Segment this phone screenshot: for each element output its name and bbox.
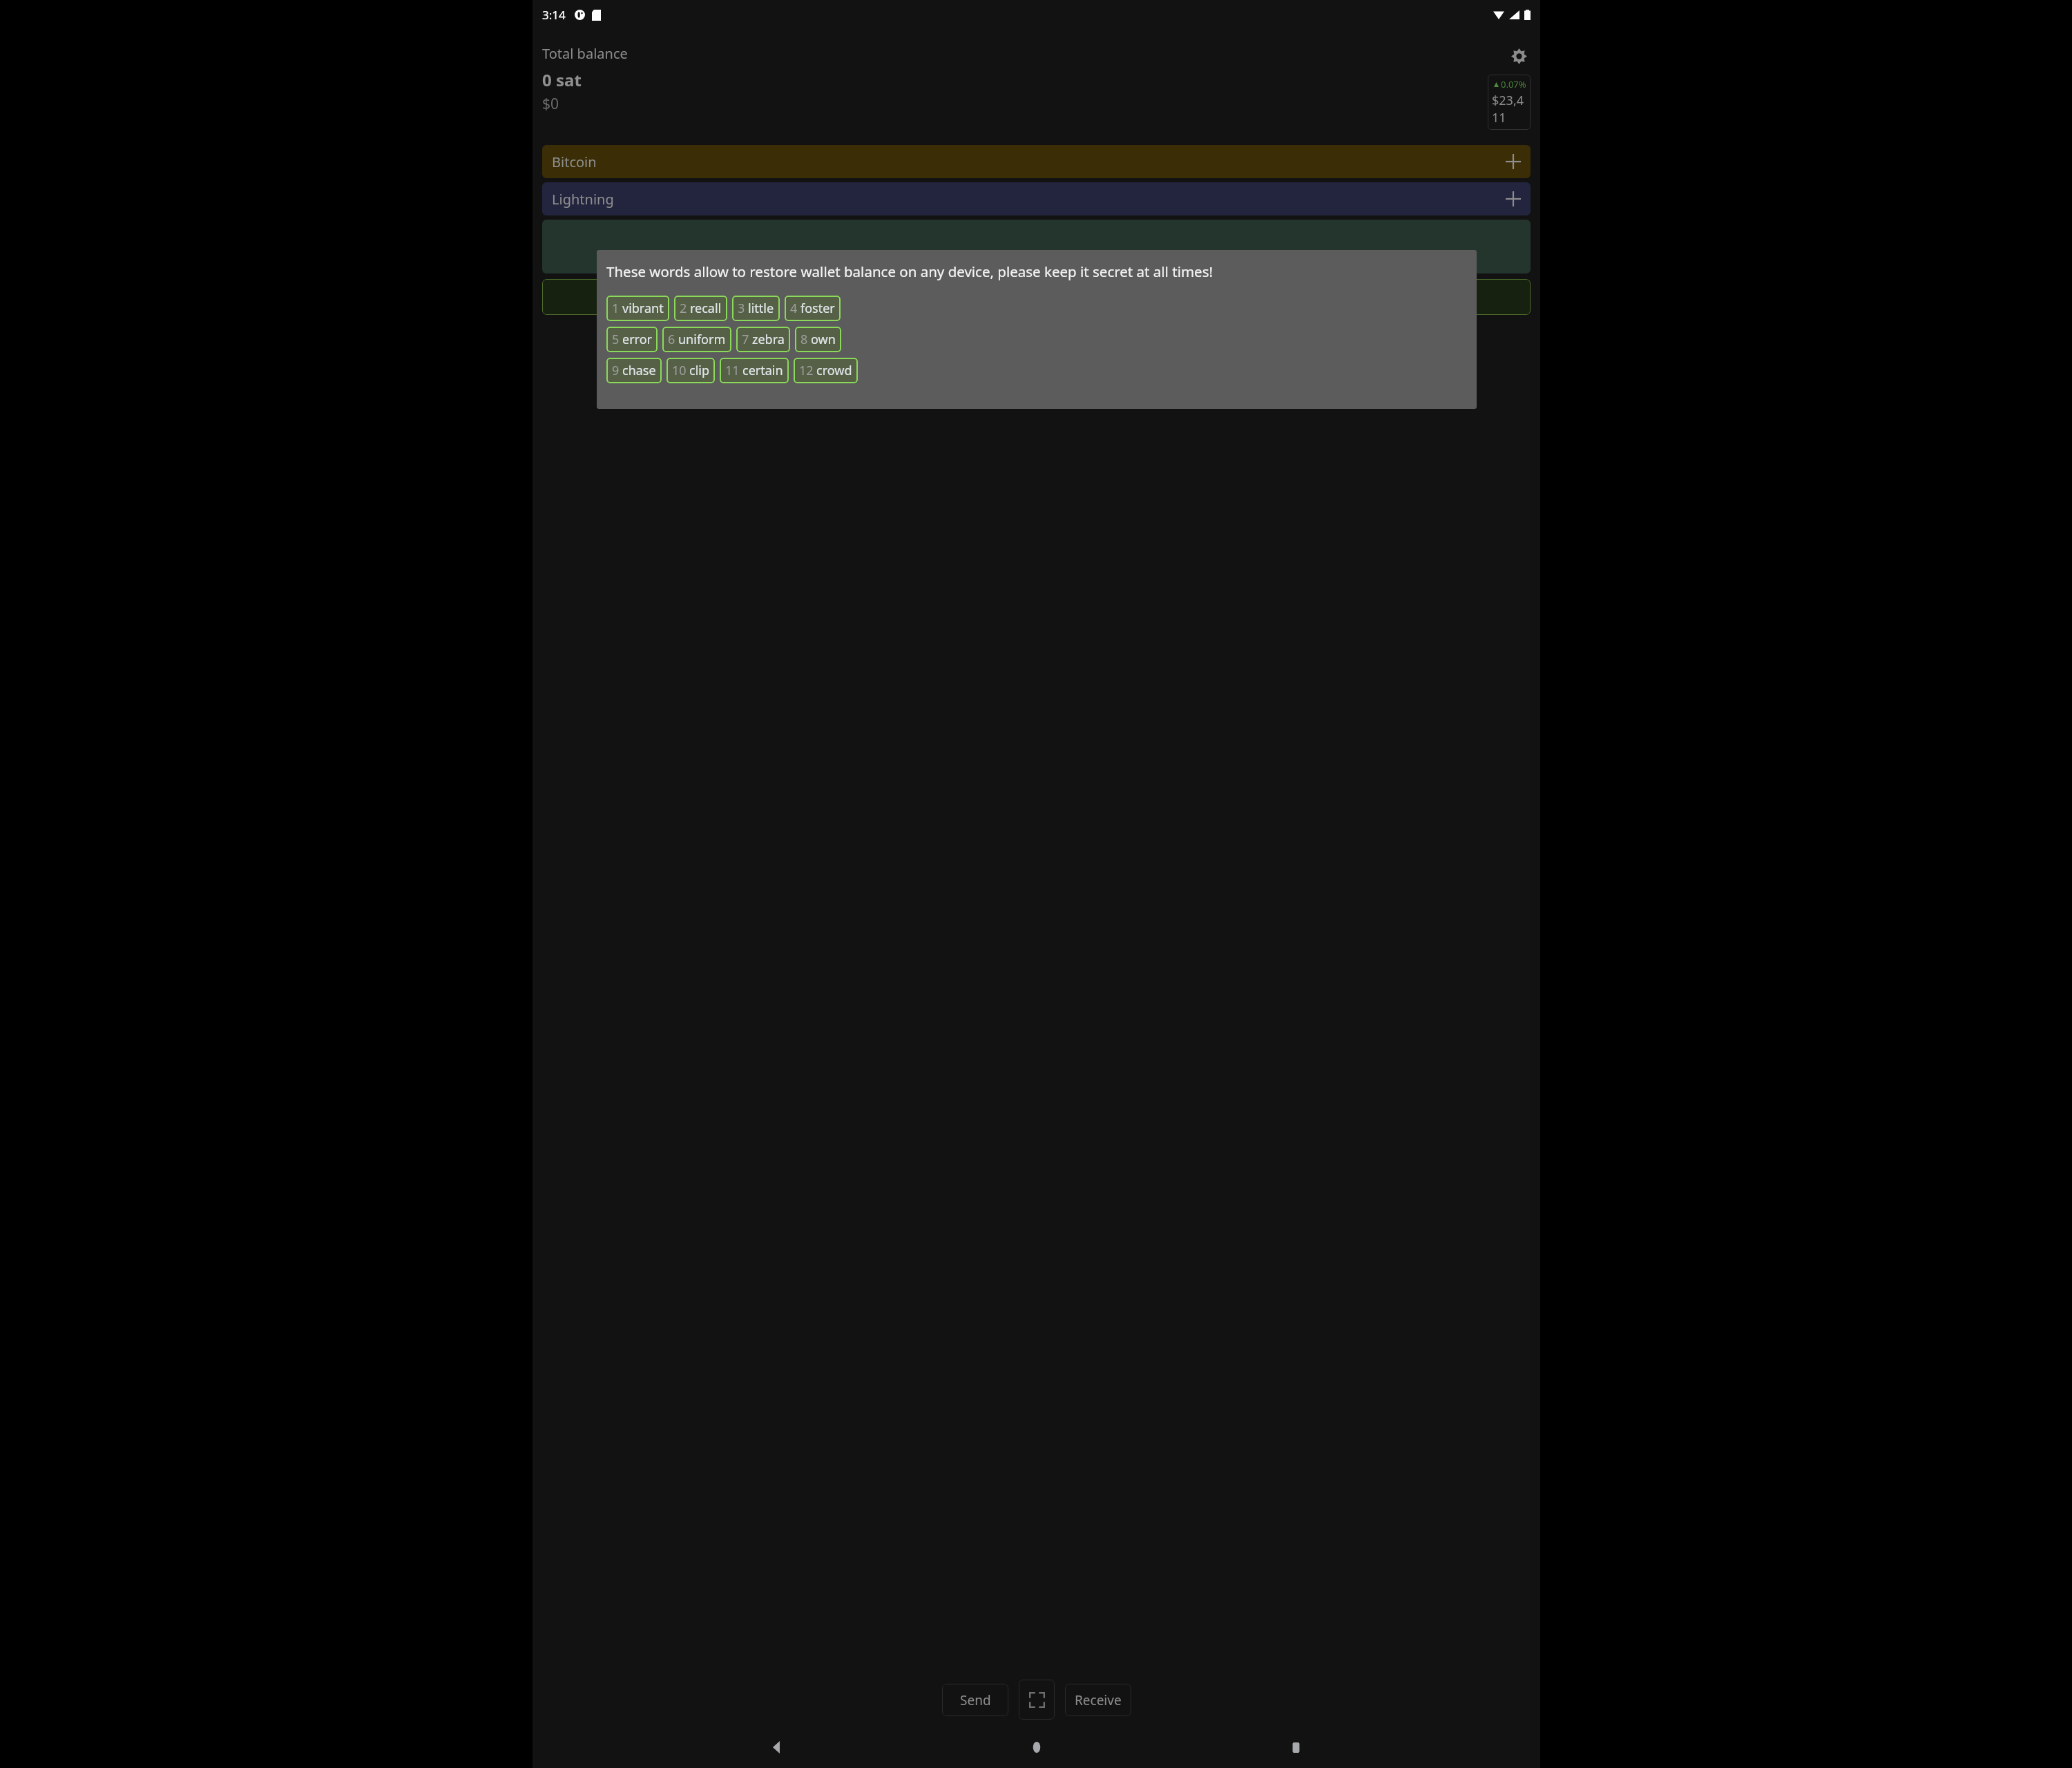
staticText: $23,411 [1492, 92, 1526, 126]
button[interactable]: Send [942, 1684, 1008, 1716]
button[interactable]: Receive [1065, 1684, 1131, 1716]
button[interactable]: Bitcoin [542, 145, 1531, 178]
button[interactable]: 10 [666, 358, 715, 383]
staticText: 9 [612, 362, 620, 379]
staticText: 2 [680, 300, 687, 317]
button[interactable]: 9 [606, 358, 662, 383]
button[interactable]: 11 [720, 358, 789, 383]
staticText: zebra [752, 331, 785, 348]
staticText: 4 [790, 300, 798, 317]
staticText: 0 sat [542, 68, 582, 91]
staticText: Total balance [542, 44, 628, 63]
staticText: 12 [799, 362, 814, 379]
staticText: 3:14 [542, 7, 566, 23]
staticText: Bitcoin [552, 153, 597, 171]
staticText: 7 [742, 331, 749, 348]
staticText: foster [800, 300, 835, 317]
button[interactable]: Scan QR code [1019, 1680, 1055, 1720]
staticText: certain [742, 362, 783, 379]
button[interactable]: 12 [794, 358, 858, 383]
staticText: 6 [668, 331, 675, 348]
staticText: These words allow to restore wallet bala… [606, 262, 1213, 281]
staticText: error [622, 331, 652, 348]
button[interactable] [542, 279, 1531, 315]
button[interactable]: Recent apps [1280, 1732, 1311, 1762]
button[interactable]: 1 [606, 296, 669, 321]
staticText: little [748, 300, 774, 317]
staticText: chase [622, 362, 656, 379]
button[interactable]: Home [1021, 1732, 1052, 1762]
staticText: own [811, 331, 836, 348]
button[interactable] [542, 220, 1531, 273]
button[interactable]: 4 [785, 296, 841, 321]
button[interactable]: 2 [674, 296, 727, 321]
button[interactable]: Back [762, 1732, 792, 1762]
staticText: vibrant [622, 300, 664, 317]
staticText: 1 [612, 300, 620, 317]
staticText: 3 [738, 300, 745, 317]
button[interactable]: 0.07% [1488, 75, 1531, 130]
staticText: Lightning [552, 190, 614, 209]
staticText: Receive [1075, 1691, 1122, 1709]
button[interactable]: Settings [1507, 44, 1531, 68]
button[interactable]: 3 [732, 296, 780, 321]
staticText: 8 [800, 331, 808, 348]
staticText: Send [960, 1691, 991, 1709]
staticText: 5 [612, 331, 620, 348]
button[interactable]: Lightning [542, 182, 1531, 215]
staticText: crowd [816, 362, 852, 379]
staticText: uniform [678, 331, 726, 348]
staticText: recall [690, 300, 722, 317]
button[interactable]: 7 [736, 327, 790, 352]
staticText: $0 [542, 94, 559, 114]
staticText: 0.07% [1501, 78, 1526, 90]
button[interactable]: 6 [662, 327, 731, 352]
button[interactable]: 8 [795, 327, 841, 352]
staticText: 10 [672, 362, 687, 379]
staticText: clip [689, 362, 709, 379]
button[interactable]: 5 [606, 327, 658, 352]
staticText: 11 [725, 362, 740, 379]
